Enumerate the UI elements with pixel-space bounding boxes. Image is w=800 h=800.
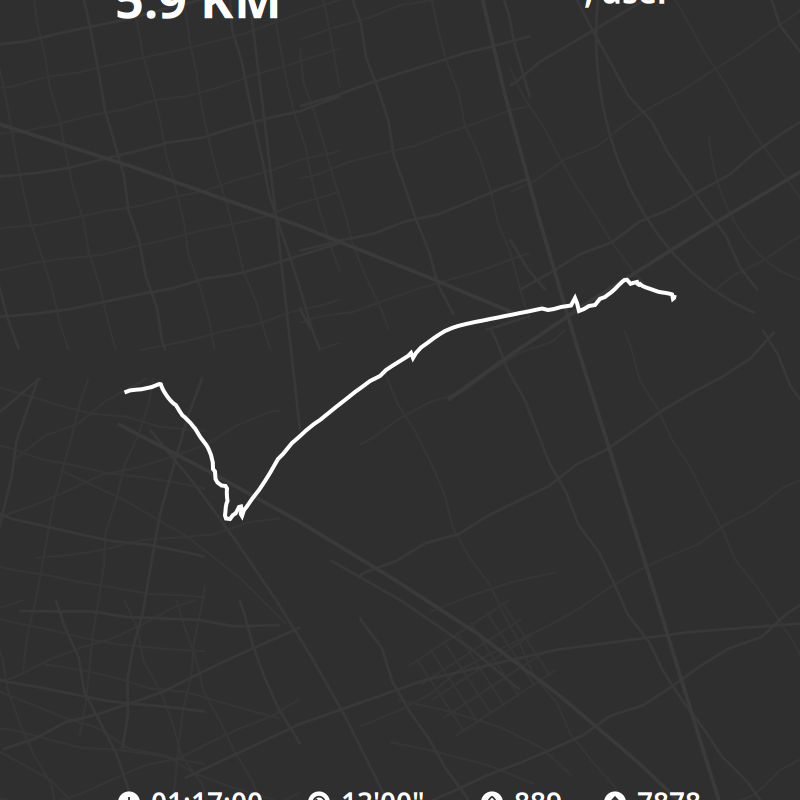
staticText: 01:17:00 <box>151 784 263 800</box>
staticText: 13'00" <box>341 784 425 800</box>
staticText: 7878 <box>637 784 701 800</box>
button[interactable]: Steps <box>604 784 701 800</box>
staticText: , user <box>584 0 671 12</box>
button[interactable]: Average pace <box>308 784 425 800</box>
staticText: 889 <box>514 784 562 800</box>
button[interactable]: Calories <box>481 784 562 800</box>
button[interactable]: Duration <box>118 784 263 800</box>
staticText: 5.9 KM <box>115 0 282 32</box>
